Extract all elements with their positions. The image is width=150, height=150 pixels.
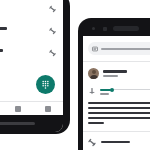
button[interactable] [83,68,150,79]
button[interactable] [83,138,150,146]
button[interactable]: Play [88,87,96,95]
button[interactable]: Call back [47,47,58,58]
button[interactable]: Call back [0,45,63,60]
button[interactable]: Contacts [33,102,63,115]
button[interactable]: Call back [0,1,63,16]
button[interactable] [88,42,150,55]
button[interactable] [83,102,150,124]
button[interactable]: Play [83,86,150,95]
button[interactable]: Dialpad [36,75,55,94]
button[interactable]: Call back [47,25,58,36]
button[interactable]: Call back [0,23,63,38]
button[interactable]: Call back [47,3,58,14]
button[interactable]: Recents [3,102,33,115]
